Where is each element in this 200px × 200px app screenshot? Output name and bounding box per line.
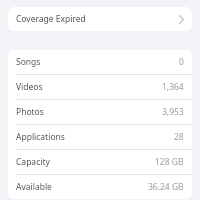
staticText: 28 bbox=[174, 131, 184, 143]
staticText: 0 bbox=[179, 56, 184, 68]
staticText: Photos bbox=[16, 106, 44, 118]
other: Open coverage details bbox=[179, 15, 184, 24]
staticText: Capacity bbox=[16, 156, 50, 168]
staticText: 1,364 bbox=[162, 81, 184, 93]
button[interactable]: Available bbox=[8, 175, 192, 199]
button[interactable]: Coverage Expired bbox=[8, 7, 192, 31]
staticText: 3,953 bbox=[162, 106, 184, 118]
staticText: Videos bbox=[16, 81, 43, 93]
staticText: 36.24 GB bbox=[148, 181, 184, 193]
staticText: Songs bbox=[16, 56, 41, 68]
button[interactable]: Capacity bbox=[8, 150, 192, 174]
button[interactable]: Applications bbox=[8, 125, 192, 149]
button[interactable]: Songs bbox=[8, 50, 192, 74]
staticText: Available bbox=[16, 181, 52, 193]
staticText: 128 GB bbox=[155, 156, 184, 168]
staticText: Applications bbox=[16, 131, 65, 143]
button[interactable]: Videos bbox=[8, 75, 192, 99]
button[interactable]: Photos bbox=[8, 100, 192, 124]
staticText: Coverage Expired bbox=[16, 13, 86, 25]
